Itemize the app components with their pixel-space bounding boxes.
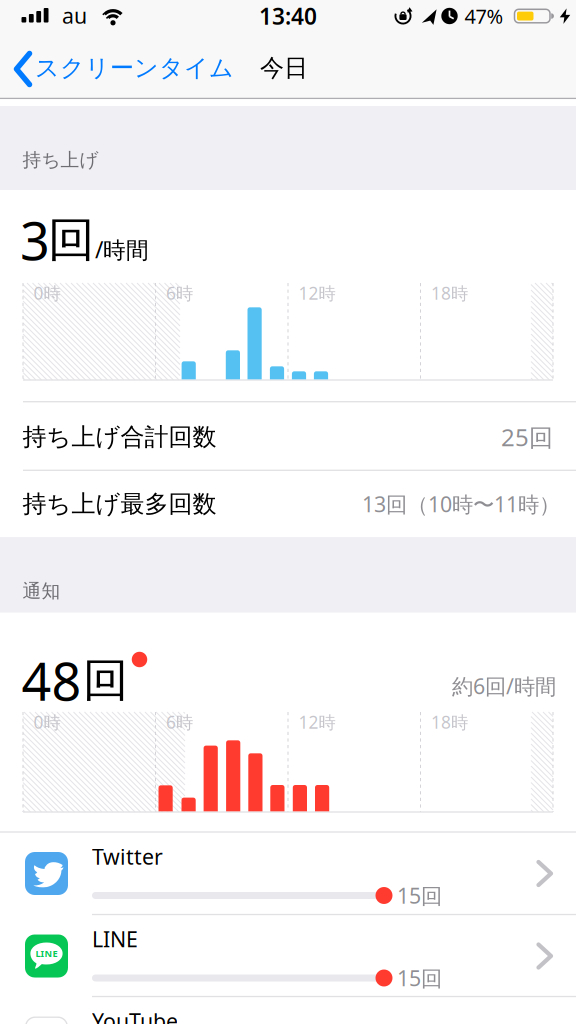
staticText: 持ち上げ合計回数 [22,422,216,452]
staticText: 回 [83,653,128,708]
button[interactable]: スクリーンタイム [0,40,250,98]
button[interactable]: LINE [0,914,576,996]
staticText: 12時 [298,281,335,304]
staticText: 通知 [22,579,60,602]
staticText: 18時 [431,281,468,304]
staticText: /時間 [95,234,149,264]
button[interactable]: YouTube [0,996,576,1024]
staticText: 25回 [501,421,553,453]
staticText: au [62,1,87,30]
staticText: LINE [92,925,138,953]
staticText: 6時 [166,710,193,733]
staticText: 12時 [298,710,335,733]
staticText: Twitter [92,842,163,871]
staticText: 回 [48,211,95,269]
staticText: 13:40 [259,1,317,31]
staticText: 持ち上げ [22,148,98,171]
staticText: 0時 [33,281,60,304]
staticText: 48 [21,646,81,715]
staticText: LINE [35,947,57,959]
staticText: 47% [464,3,503,29]
staticText: 15回 [397,881,442,910]
staticText: スクリーンタイム [35,53,234,83]
staticText: 13回（10時〜11時） [362,490,560,518]
staticText: 3 [20,205,50,275]
staticText: 6時 [166,281,193,304]
staticText: 18時 [431,710,468,733]
staticText: YouTube [92,1007,178,1024]
staticText: 15回 [397,964,442,992]
staticText: 0時 [33,710,60,733]
staticText: 約6回/時間 [452,672,556,700]
button[interactable]: Twitter [0,832,576,914]
staticText: 今日 [260,53,308,83]
staticText: 持ち上げ最多回数 [22,489,216,519]
